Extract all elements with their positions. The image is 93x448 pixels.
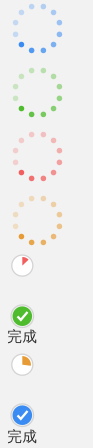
staticText: 完成 xyxy=(7,328,37,346)
staticText: 完成 xyxy=(7,428,37,446)
